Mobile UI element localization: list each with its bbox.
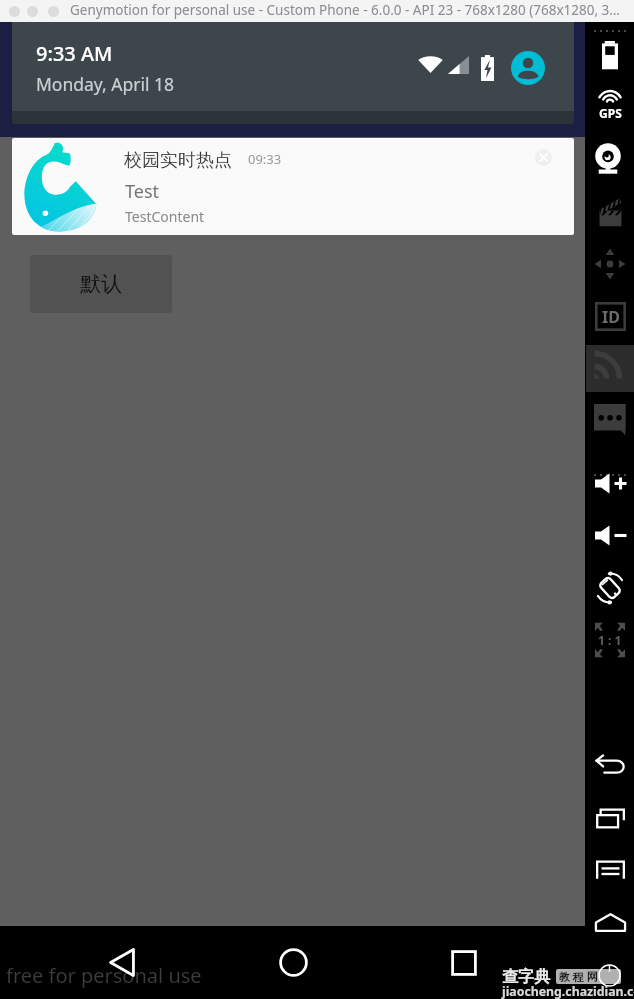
button[interactable]: Identifiers: [586, 292, 634, 340]
button[interactable]: Battery: [586, 31, 634, 79]
button[interactable]: Close window: [9, 6, 20, 17]
staticText: 校园实时热点: [124, 149, 232, 172]
staticText: Genymotion for personal use - Custom Pho…: [70, 1, 621, 19]
button[interactable]: Video recording: [586, 188, 634, 236]
button[interactable]: User profile: [511, 51, 545, 85]
staticText: jiaocheng.chazidian.com: [502, 983, 634, 999]
staticText: 1 : 1: [598, 632, 622, 648]
button[interactable]: Recent apps: [586, 794, 634, 842]
button[interactable]: Rotate: [586, 564, 634, 612]
button[interactable]: Volume down: [586, 511, 634, 559]
button[interactable]: Home: [259, 926, 327, 999]
button[interactable]: Back: [586, 742, 634, 790]
staticText: Test: [125, 179, 160, 204]
button[interactable]: Messages: [586, 396, 634, 444]
button[interactable]: Camera: [586, 135, 634, 183]
button[interactable]: Network: [586, 345, 634, 392]
button[interactable]: Dismiss notification: [535, 149, 552, 166]
staticText: free for personal use: [6, 962, 202, 989]
staticText: 教 程 网: [559, 969, 598, 984]
button[interactable]: Volume up: [586, 459, 634, 507]
staticText: 09:33: [248, 150, 282, 168]
button[interactable]: Back: [88, 926, 156, 999]
staticText: Monday, April 18: [36, 72, 175, 96]
staticText: 查字典: [502, 967, 550, 987]
button[interactable]: GPS: [586, 82, 634, 130]
button[interactable]: Scale 1:1: [586, 616, 634, 664]
button[interactable]: Recent apps: [430, 926, 498, 999]
staticText: 默认: [80, 271, 122, 297]
button[interactable]: Home: [586, 898, 634, 946]
staticText: 9:33 AM: [36, 40, 113, 67]
staticText: GPS: [599, 105, 622, 121]
button[interactable]: Zoom window: [48, 6, 59, 17]
staticText: ID: [602, 306, 620, 328]
button[interactable]: 默认: [30, 255, 172, 313]
button[interactable]: Menu: [586, 846, 634, 894]
button[interactable]: Minimise window: [27, 6, 38, 17]
button[interactable]: D-Pad: [586, 240, 634, 288]
staticText: TestContent: [125, 207, 205, 226]
button[interactable]: 校园实时热点: [12, 138, 574, 235]
